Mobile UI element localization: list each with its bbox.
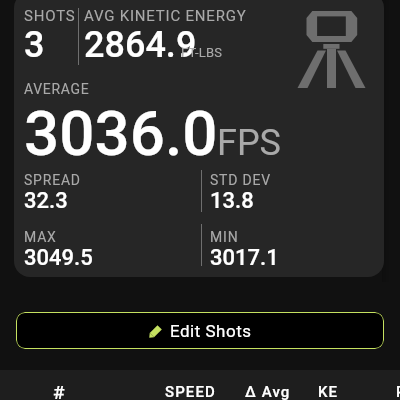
staticText: AVERAGE <box>24 81 90 97</box>
staticText: MAX <box>24 229 57 245</box>
button[interactable]: Edit Shots <box>16 312 384 349</box>
other: Chronograph device <box>298 11 367 88</box>
staticText: 3036.0 <box>24 97 218 170</box>
staticText: PF <box>396 383 400 400</box>
staticText: SPEED <box>165 383 216 400</box>
button[interactable]: SPEED <box>165 383 216 400</box>
staticText: STD DEV <box>210 172 271 188</box>
staticText: FT-LBS <box>181 45 223 60</box>
staticText: 2864.9 <box>84 24 197 66</box>
staticText: MIN <box>210 229 239 245</box>
button[interactable]: Δ Avg <box>245 383 291 400</box>
staticText: 13.8 <box>210 188 254 214</box>
button[interactable]: KE <box>318 383 339 400</box>
staticText: SHOTS <box>24 7 76 25</box>
staticText: AVG KINETIC ENERGY <box>84 7 247 25</box>
button[interactable]: # <box>53 381 66 400</box>
staticText: 3049.5 <box>24 245 93 271</box>
staticText: FPS <box>217 122 281 164</box>
staticText: SPREAD <box>24 172 81 188</box>
staticText: 32.3 <box>24 188 68 214</box>
button[interactable]: PF <box>396 383 400 400</box>
staticText: Edit Shots <box>170 321 252 341</box>
staticText: 3 <box>24 24 45 66</box>
staticText: Δ Avg <box>245 383 291 400</box>
staticText: 3017.1 <box>210 245 279 271</box>
staticText: KE <box>318 383 339 400</box>
staticText: # <box>53 381 66 400</box>
